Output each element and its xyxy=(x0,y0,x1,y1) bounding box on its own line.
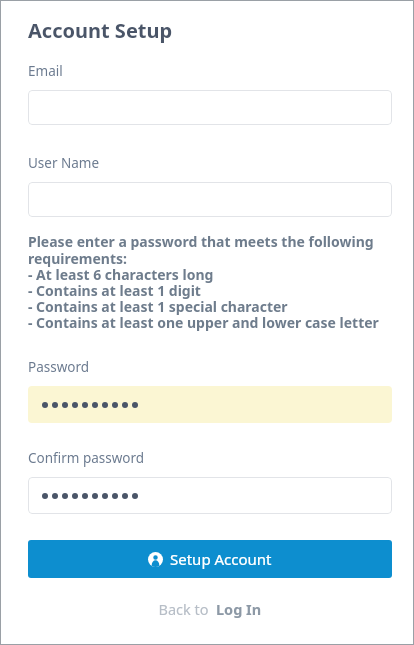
staticText: Email xyxy=(28,62,63,80)
button[interactable] xyxy=(28,182,392,217)
button[interactable]: Log In xyxy=(216,599,262,619)
button[interactable] xyxy=(28,386,392,423)
staticText: Password xyxy=(28,358,90,376)
staticText: Account Setup xyxy=(28,17,173,44)
button[interactable]: Setup Account xyxy=(28,540,392,578)
staticText: Please enter a password that meets the f… xyxy=(28,232,379,332)
staticText: Back to xyxy=(158,599,209,619)
staticText: Setup Account xyxy=(170,549,272,569)
staticText: Confirm password xyxy=(28,449,145,467)
staticText: Log In xyxy=(216,599,262,619)
button[interactable] xyxy=(28,477,392,514)
button[interactable] xyxy=(28,90,392,125)
staticText: User Name xyxy=(28,154,100,172)
